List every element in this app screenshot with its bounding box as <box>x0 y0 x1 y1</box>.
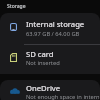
staticText: OneDrive <box>26 83 61 93</box>
button[interactable]: OneDrive <box>0 80 100 100</box>
staticText: Internal storage <box>26 19 85 29</box>
button[interactable]: Internal storage <box>0 13 100 44</box>
button[interactable]: Storage <box>0 0 100 12</box>
staticText: Not inserted <box>26 59 60 67</box>
other: SD card <box>10 53 17 62</box>
staticText: Storage <box>7 3 26 10</box>
other: OneDrive <box>10 88 20 94</box>
staticText: 63.97 GB / 64.00 GB <box>26 30 80 38</box>
staticText: SD card <box>26 49 54 59</box>
staticText: Not enough space in internal storage <box>26 93 100 100</box>
other: Internal storage <box>10 23 17 31</box>
button[interactable]: SD card <box>0 45 100 74</box>
